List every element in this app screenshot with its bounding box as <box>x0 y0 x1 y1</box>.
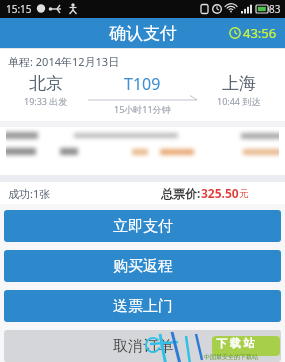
staticText: 购买返程 <box>113 257 173 276</box>
button[interactable]: Payment countdown timer <box>229 24 277 42</box>
staticText: 立即支付 <box>113 217 173 236</box>
staticText: 元 <box>239 187 249 200</box>
staticText: T109 <box>124 73 161 95</box>
staticText: 确认支付 <box>109 23 177 44</box>
button[interactable]: 购买返程 <box>4 250 281 282</box>
staticText: 15:15 <box>6 2 32 16</box>
staticText: 送票上门 <box>113 297 173 316</box>
staticText: 下 载 站 <box>216 335 255 350</box>
staticText: 取消订单 <box>113 337 173 356</box>
staticText: 15小时11分钟 <box>114 103 171 115</box>
staticText: 单程: 2014年12月13日 <box>8 54 120 69</box>
staticText: 成功:1张 <box>8 186 51 201</box>
staticText: 总票价: <box>161 185 201 201</box>
button[interactable]: 取消订单 <box>4 330 281 362</box>
staticText: 上海 <box>222 73 256 94</box>
staticText: 中国最安全的下载站 <box>204 353 258 361</box>
staticText: 19:33 出发 <box>24 95 68 107</box>
staticText: 10:44 到达 <box>217 95 261 107</box>
staticText: 325.50 <box>201 185 239 201</box>
button[interactable]: 立即支付 <box>4 210 281 242</box>
button[interactable]: 送票上门 <box>4 290 281 322</box>
staticText: 43:56 <box>243 24 277 42</box>
staticText: 83 <box>269 2 281 16</box>
staticText: 北京 <box>29 73 63 94</box>
